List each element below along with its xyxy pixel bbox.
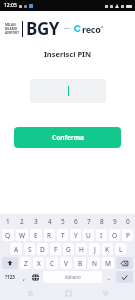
button[interactable]: M: [102, 257, 114, 269]
button[interactable]: Z: [20, 257, 31, 269]
staticText: R: [47, 231, 52, 240]
staticText: Y: [74, 231, 78, 240]
staticText: J: [94, 245, 96, 254]
staticText: P: [126, 231, 130, 240]
staticText: 0: [126, 217, 130, 226]
staticText: 9: [113, 217, 117, 226]
button[interactable]: [30, 79, 106, 103]
staticText: 12:05: [4, 2, 17, 9]
staticText: B: [78, 259, 83, 268]
staticText: L: [119, 245, 123, 254]
staticText: AIRPORT: [5, 31, 19, 35]
button[interactable]: ,: [18, 271, 29, 283]
staticText: .: [108, 273, 110, 282]
staticText: N: [92, 259, 97, 268]
button[interactable]: 0: [121, 216, 134, 227]
button[interactable]: S: [24, 243, 35, 255]
staticText: BGY: [26, 17, 60, 40]
staticText: X: [37, 259, 41, 268]
button[interactable]: W: [16, 229, 28, 241]
button[interactable]: I: [96, 229, 107, 241]
button[interactable]: J: [89, 243, 100, 255]
staticText: I: [100, 231, 103, 240]
button[interactable]: Conferma: [14, 127, 121, 148]
staticText: K: [105, 245, 110, 254]
button[interactable]: Back: [97, 286, 113, 300]
button[interactable]: 5: [56, 216, 69, 227]
staticText: ?123: [5, 274, 15, 280]
staticText: italiano: [65, 274, 81, 280]
button[interactable]: 6: [69, 216, 82, 227]
staticText: U: [86, 231, 91, 240]
staticText: 4: [48, 217, 52, 226]
staticText: reco: [82, 23, 101, 35]
button[interactable]: B: [74, 257, 86, 269]
button[interactable]: V: [60, 257, 72, 269]
button[interactable]: 2: [15, 216, 29, 227]
staticText: ,: [23, 273, 25, 282]
staticText: V: [64, 259, 68, 268]
staticText: S: [28, 245, 32, 254]
button[interactable]: G: [63, 243, 74, 255]
button[interactable]: A: [10, 243, 22, 255]
staticText: Conferma: [52, 133, 84, 142]
button[interactable]: italiano: [43, 271, 102, 283]
staticText: °: [101, 25, 104, 32]
staticText: BGAMO: [5, 27, 18, 31]
staticText: 5: [61, 217, 65, 226]
button[interactable]: Change language: [29, 271, 42, 283]
staticText: M: [105, 259, 111, 268]
staticText: 3: [34, 217, 38, 226]
button[interactable]: H: [76, 243, 87, 255]
button[interactable]: Q: [2, 229, 14, 241]
button[interactable]: Home: [60, 286, 76, 300]
button[interactable]: ?123: [1, 271, 18, 283]
button[interactable]: 9: [108, 216, 121, 227]
staticText: 6: [74, 217, 78, 226]
staticText: G: [66, 245, 71, 254]
button[interactable]: C: [46, 257, 58, 269]
staticText: 1: [6, 217, 10, 226]
button[interactable]: O: [109, 229, 120, 241]
button[interactable]: N: [88, 257, 100, 269]
button[interactable]: Shift: [2, 257, 18, 269]
staticText: Z: [24, 259, 28, 268]
button[interactable]: 4: [43, 216, 56, 227]
button[interactable]: X: [33, 257, 44, 269]
button[interactable]: .: [103, 271, 115, 283]
staticText: 7: [87, 217, 91, 226]
staticText: Inserisci PIN: [0, 49, 135, 59]
button[interactable]: 8: [95, 216, 108, 227]
staticText: E: [34, 231, 38, 240]
button[interactable]: E: [30, 229, 42, 241]
button[interactable]: U: [83, 229, 94, 241]
button[interactable]: K: [102, 243, 113, 255]
button[interactable]: R: [44, 229, 55, 241]
staticText: Q: [5, 231, 11, 240]
button[interactable]: T: [57, 229, 68, 241]
staticText: MILAN: [5, 23, 16, 27]
button[interactable]: 1: [1, 216, 15, 227]
button[interactable]: D: [37, 243, 48, 255]
button[interactable]: P: [122, 229, 133, 241]
button[interactable]: Backspace: [116, 257, 133, 269]
button[interactable]: 7: [82, 216, 95, 227]
button[interactable]: Recents: [22, 286, 38, 300]
staticText: O: [112, 231, 118, 240]
staticText: D: [40, 245, 45, 254]
button[interactable]: 3: [29, 216, 43, 227]
button[interactable]: L: [115, 243, 126, 255]
staticText: A: [14, 245, 19, 254]
staticText: 8: [100, 217, 104, 226]
button[interactable]: Enter: [116, 271, 133, 283]
staticText: C: [50, 259, 55, 268]
staticText: F: [54, 245, 58, 254]
button[interactable]: F: [50, 243, 61, 255]
staticText: 2: [20, 217, 24, 226]
staticText: H: [79, 245, 84, 254]
staticText: W: [19, 231, 26, 240]
button[interactable]: Y: [70, 229, 81, 241]
staticText: T: [61, 231, 65, 240]
